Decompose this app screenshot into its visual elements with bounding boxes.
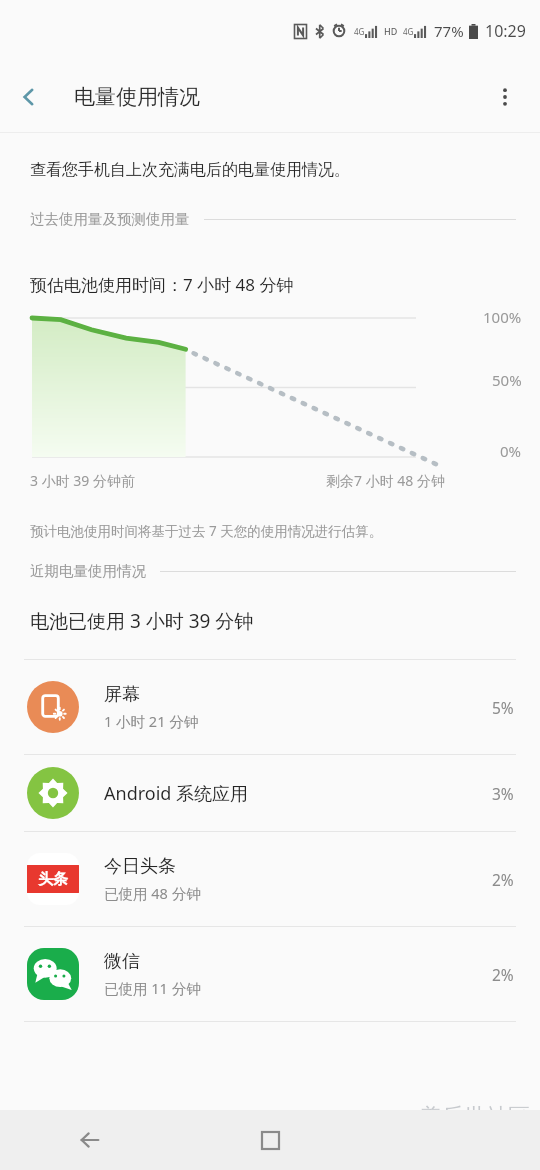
staticText: 3%	[492, 783, 514, 804]
staticText: 电量使用情况	[74, 84, 200, 110]
button[interactable]: More options	[476, 68, 534, 126]
staticText: 2%	[492, 869, 514, 890]
button[interactable]: 屏幕	[0, 660, 540, 754]
button[interactable]: Android 系统应用	[0, 755, 540, 831]
staticText: 盖乐世社区	[420, 1103, 530, 1131]
staticText: 3 小时 39 分钟前	[30, 471, 135, 490]
staticText: 已使用 11 分钟	[104, 978, 201, 998]
button[interactable]: Back	[0, 1110, 180, 1170]
button[interactable]: Back	[0, 68, 58, 126]
staticText: 过去使用量及预测使用量	[30, 210, 190, 228]
staticText: 已使用 48 分钟	[104, 883, 201, 903]
staticText: 查看您手机自上次充满电后的电量使用情况。	[30, 160, 350, 180]
staticText: 屏幕	[104, 683, 140, 706]
staticText: 预计电池使用时间将基于过去 7 天您的使用情况进行估算。	[30, 522, 383, 540]
staticText: 预估电池使用时间：7 小时 48 分钟	[30, 273, 294, 296]
staticText: 1 小时 21 分钟	[104, 711, 199, 731]
button[interactable]: 微信	[0, 927, 540, 1021]
staticText: 100%	[483, 307, 522, 327]
staticText: 50%	[492, 370, 522, 390]
staticText: 电池已使用 3 小时 39 分钟	[30, 608, 254, 634]
staticText: 近期电量使用情况	[30, 562, 146, 580]
staticText: 2%	[492, 964, 514, 985]
staticText: 头条	[38, 870, 68, 889]
staticText: 微信	[104, 950, 140, 973]
button[interactable]: 头条	[0, 832, 540, 926]
staticText: 0%	[500, 441, 522, 461]
staticText: 77%	[434, 21, 464, 41]
staticText: HD	[384, 25, 398, 37]
staticText: Android 系统应用	[104, 781, 249, 806]
staticText: 10:29	[485, 20, 526, 42]
staticText: 4G	[403, 26, 414, 37]
staticText: 5%	[492, 697, 514, 718]
staticText: 4G	[354, 26, 365, 37]
staticText: 剩余7 小时 48 分钟	[326, 471, 445, 490]
staticText: 今日头条	[104, 855, 176, 878]
button[interactable]: Recents	[180, 1110, 360, 1170]
